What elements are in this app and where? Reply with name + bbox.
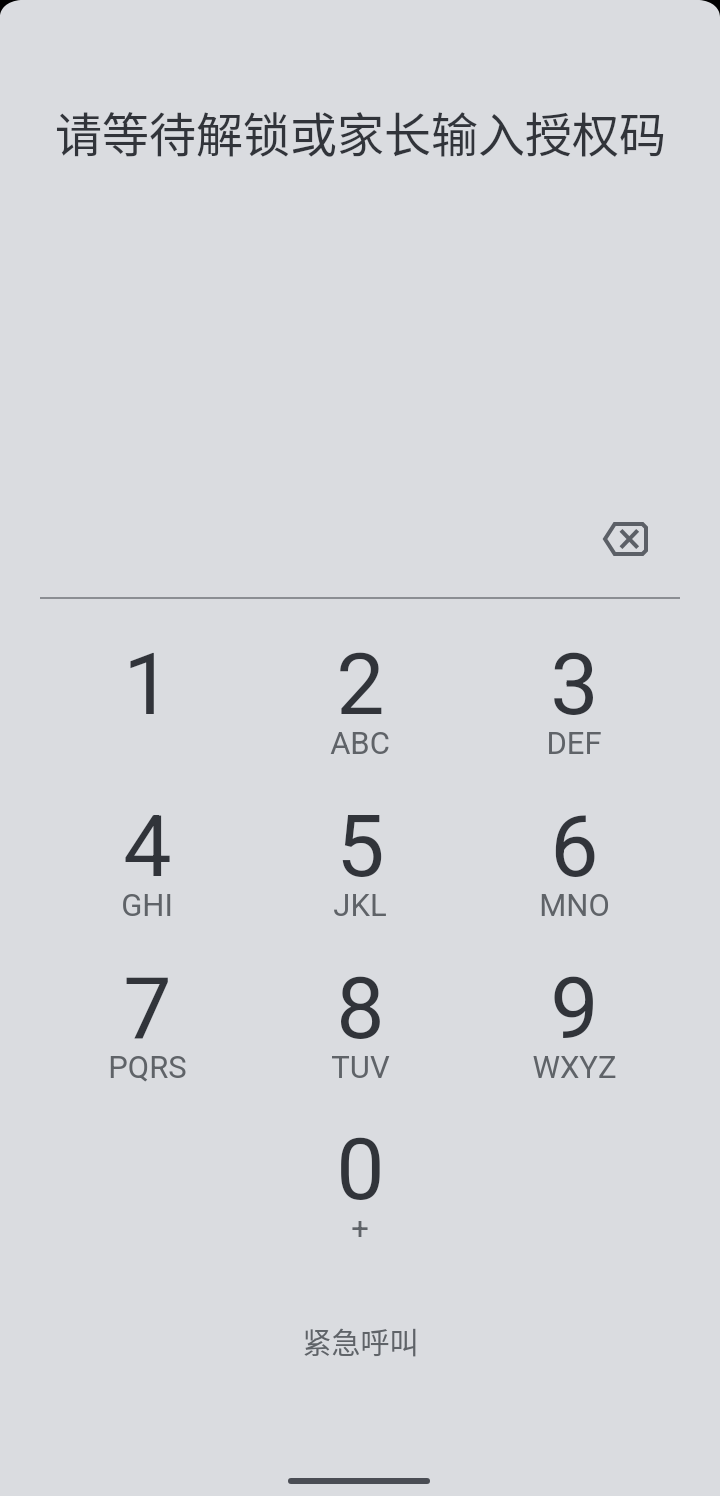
staticText: 8 bbox=[336, 958, 385, 1059]
staticText: WXYZ bbox=[532, 1049, 617, 1085]
staticText: JKL bbox=[333, 887, 387, 923]
staticText: 0 bbox=[336, 1119, 385, 1220]
button[interactable]: 2 ABC bbox=[260, 622, 460, 782]
button[interactable]: Delete bbox=[577, 491, 673, 587]
button[interactable]: 6 MNO bbox=[474, 784, 674, 944]
staticText: GHI bbox=[121, 887, 173, 923]
button[interactable]: 3 DEF bbox=[474, 622, 674, 782]
staticText: 请等待解锁或家长输入授权码 bbox=[55, 97, 666, 165]
button[interactable]: 1 bbox=[47, 622, 247, 782]
button[interactable]: 9 WXYZ bbox=[474, 946, 674, 1106]
staticText: ABC bbox=[330, 725, 390, 761]
staticText: MNO bbox=[539, 887, 610, 923]
staticText: 7 bbox=[123, 958, 172, 1059]
staticText: 9 bbox=[550, 958, 599, 1059]
staticText: 6 bbox=[550, 796, 599, 897]
staticText: TUV bbox=[331, 1049, 390, 1085]
staticText: 3 bbox=[550, 634, 599, 735]
staticText: 紧急呼叫 bbox=[302, 1320, 419, 1362]
staticText: PQRS bbox=[108, 1049, 187, 1085]
staticText: 4 bbox=[123, 796, 172, 897]
button[interactable]: 5 JKL bbox=[260, 784, 460, 944]
button[interactable]: 7 PQRS bbox=[47, 946, 247, 1106]
staticText: 5 bbox=[336, 796, 385, 897]
staticText: DEF bbox=[546, 725, 602, 761]
staticText: 1 bbox=[123, 634, 172, 735]
staticText: + bbox=[351, 1210, 369, 1246]
button[interactable]: 8 TUV bbox=[260, 946, 460, 1106]
button[interactable]: 4 GHI bbox=[47, 784, 247, 944]
staticText: 2 bbox=[336, 634, 385, 735]
button[interactable]: 0 + bbox=[260, 1107, 460, 1267]
button[interactable]: 紧急呼叫 bbox=[258, 1302, 463, 1380]
